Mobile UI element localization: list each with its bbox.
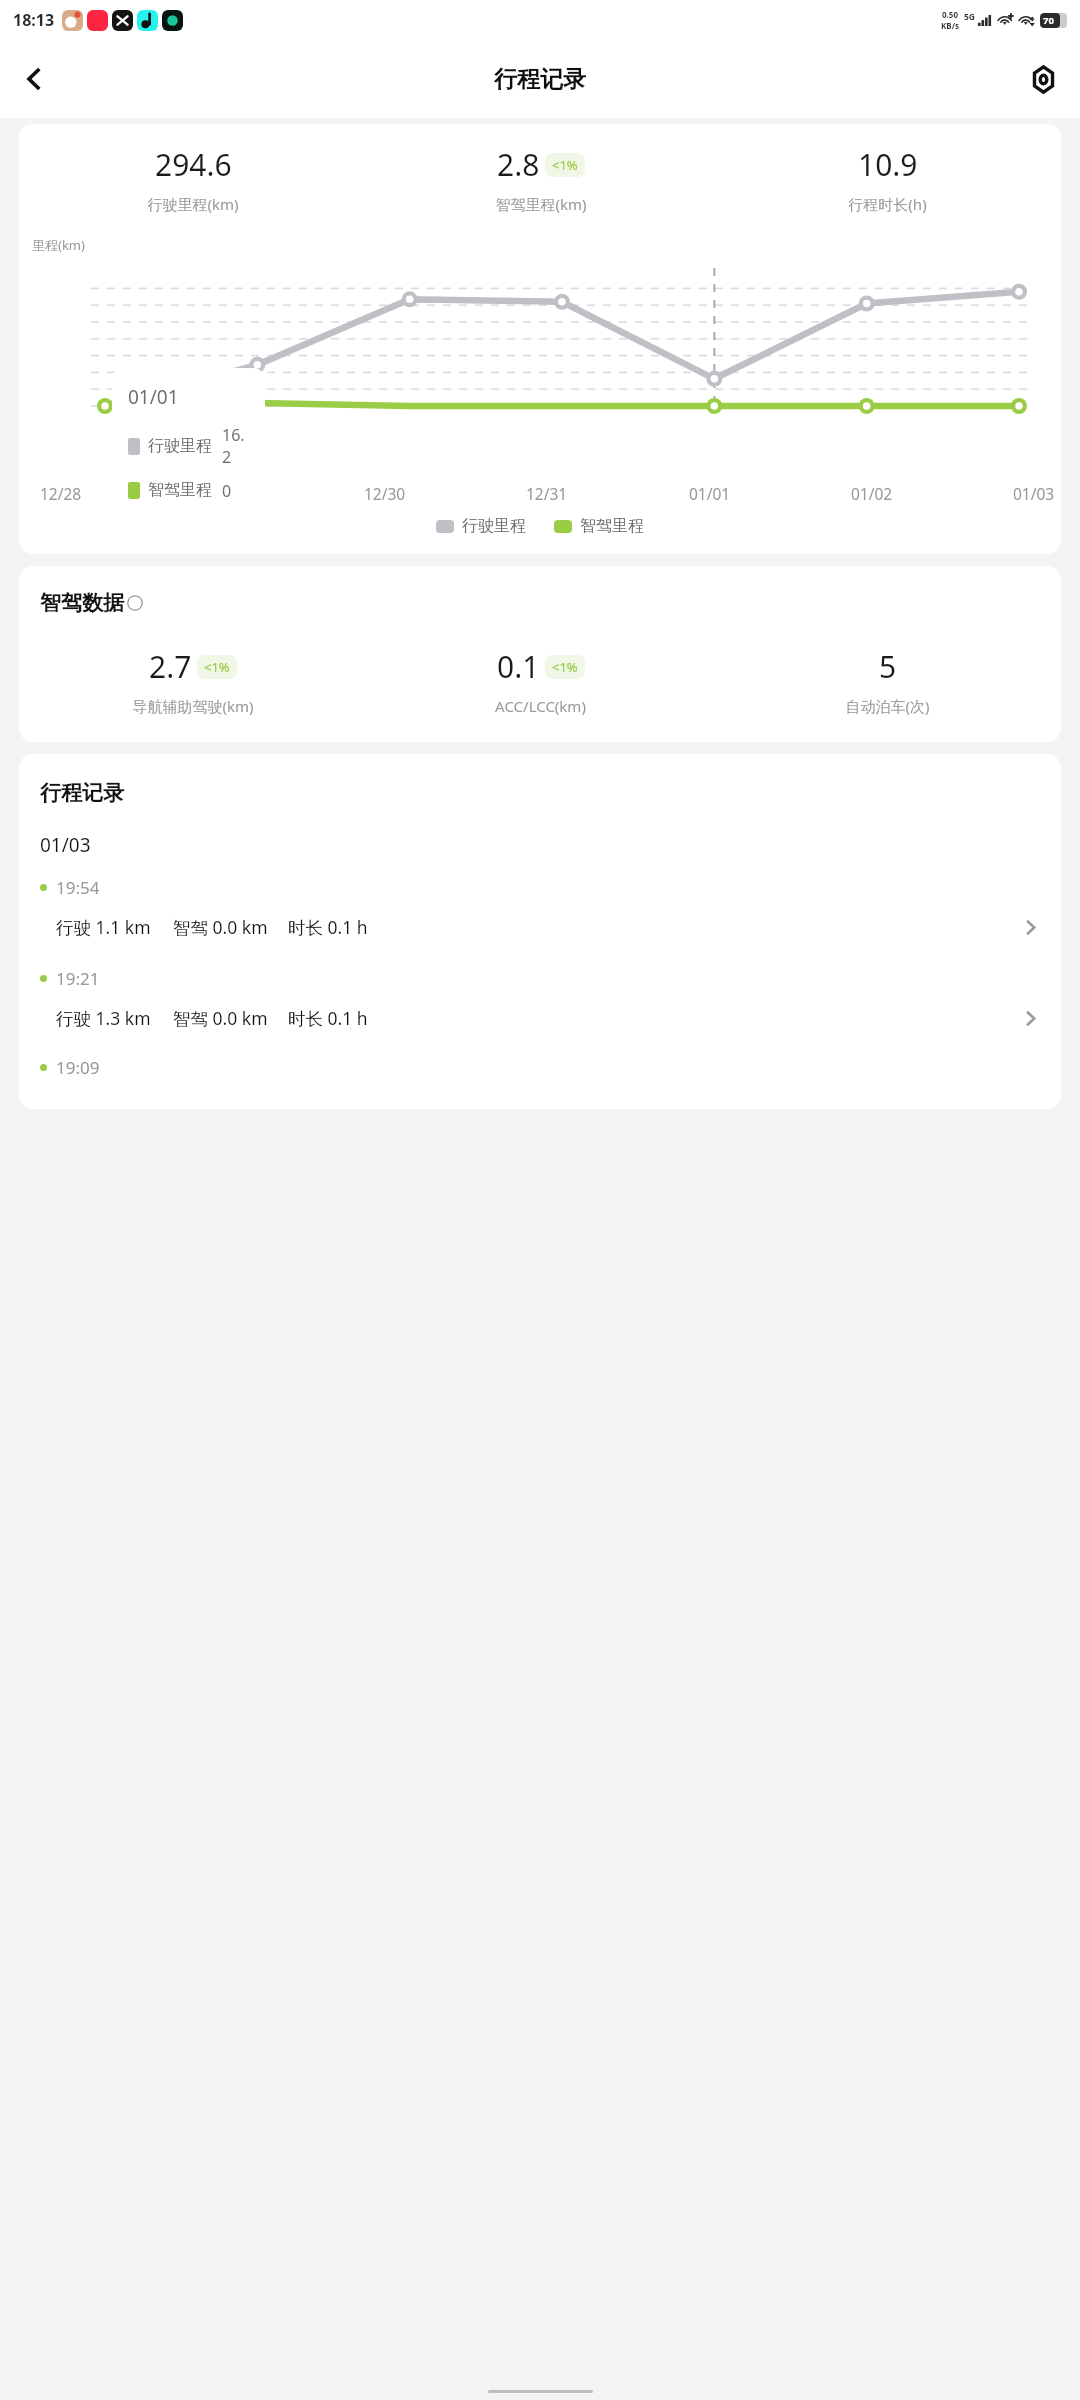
staticText: 时长 0.1 h (288, 915, 368, 939)
staticText: 行驶里程 (148, 436, 212, 456)
staticText: 01/03 (1013, 483, 1055, 504)
staticText: 自动泊车(次) (845, 696, 930, 716)
button[interactable]: 19:21 (19, 949, 1061, 1040)
staticText: 19:54 (56, 876, 100, 899)
button[interactable]: 行驶里程 (436, 516, 526, 536)
staticText: 0.1 (497, 646, 540, 687)
staticText: 智驾里程(km) (495, 194, 587, 214)
staticText: 智驾 0.0 km (173, 915, 268, 939)
staticText: 智驾数据 (40, 590, 124, 616)
staticText: 2.7 (149, 646, 192, 687)
staticText: KB/s (941, 20, 959, 31)
staticText: 16.2 (222, 424, 249, 468)
staticText: 智驾里程 (148, 480, 212, 500)
staticText: 5G (964, 11, 976, 23)
staticText: 19:09 (56, 1056, 100, 1079)
staticText: 智驾里程 (580, 516, 644, 536)
button[interactable]: 智驾里程 (554, 516, 644, 536)
button[interactable]: Settings (1016, 52, 1070, 106)
staticText: 行程记录 (40, 780, 124, 806)
staticText: 10.9 (858, 144, 918, 185)
staticText: 行驶里程 (462, 516, 526, 536)
staticText: 294.6 (155, 144, 232, 185)
staticText: 行驶 1.3 km (56, 1006, 151, 1030)
staticText: 12/29 (202, 483, 244, 504)
staticText: 行程记录 (494, 65, 586, 94)
staticText: <1% (552, 658, 578, 676)
staticText: 5 (879, 646, 897, 687)
staticText: 0.50 (942, 9, 958, 20)
staticText: 智驾 0.0 km (173, 1006, 268, 1030)
staticText: 时长 0.1 h (288, 1006, 368, 1030)
staticText: 12/28 (40, 483, 82, 504)
staticText: 里程(km) (32, 236, 85, 254)
staticText: <1% (552, 156, 578, 174)
staticText: 01/02 (851, 483, 893, 504)
staticText: 70 (1043, 14, 1054, 27)
staticText: 导航辅助驾驶(km) (132, 696, 254, 716)
staticText: 行程时长(h) (848, 194, 927, 214)
staticText: 01/01 (128, 384, 179, 410)
staticText: 行驶 1.1 km (56, 915, 151, 939)
button[interactable]: 智驾数据 (40, 590, 143, 616)
staticText: 2.8 (497, 144, 540, 185)
staticText: 行驶里程(km) (147, 194, 239, 214)
staticText: 12/31 (526, 483, 568, 504)
staticText: 12/30 (364, 483, 406, 504)
staticText: 01/01 (689, 483, 731, 504)
staticText: ACC/LCC(km) (495, 696, 586, 716)
button[interactable]: 19:54 (19, 858, 1061, 949)
button[interactable]: Back (8, 52, 62, 106)
staticText: 0 (222, 480, 232, 500)
staticText: 01/03 (40, 832, 91, 858)
staticText: 18:13 (13, 9, 55, 31)
staticText: <1% (204, 658, 230, 676)
staticText: 19:21 (56, 967, 100, 990)
